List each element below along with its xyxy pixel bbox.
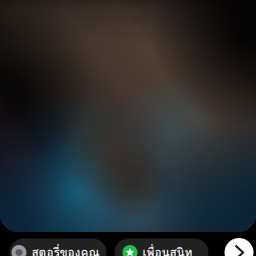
- button[interactable]: Share: [224, 238, 253, 256]
- button[interactable]: สตอรี่ของคุณ: [9, 238, 106, 256]
- button[interactable]: เพื่อนสนิท: [114, 238, 208, 256]
- staticText: เพื่อนสนิท: [142, 243, 192, 256]
- staticText: สตอรี่ของคุณ: [31, 243, 99, 256]
